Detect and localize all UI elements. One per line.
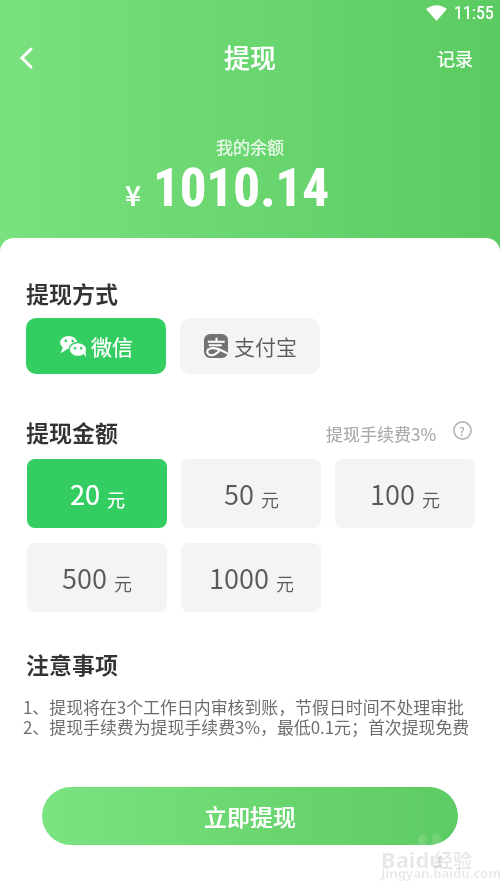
button[interactable]: Back	[0, 32, 52, 84]
staticText: 元	[261, 486, 279, 512]
staticText: 提现方式	[26, 276, 118, 309]
staticText: 提现手续费3%	[326, 421, 437, 446]
staticText: 2、提现手续费为提现手续费3%，最低0.1元；首次提现免费	[23, 714, 470, 738]
staticText: 100	[370, 474, 415, 513]
button[interactable]: 500	[27, 543, 167, 612]
button[interactable]: 50	[181, 459, 321, 528]
staticText: ?	[459, 422, 465, 439]
staticText: 20	[70, 474, 100, 513]
staticText: 50	[224, 474, 254, 513]
staticText: 注意事项	[26, 647, 118, 680]
staticText: 我的余额	[216, 134, 284, 159]
button[interactable]: Fee info	[452, 420, 472, 440]
staticText: 记录	[437, 45, 473, 71]
button[interactable]: 记录	[406, 32, 486, 84]
staticText: 经验	[434, 846, 473, 874]
staticText: 1、提现将在3个工作日内审核到账，节假日时间不处理审批	[23, 694, 465, 718]
staticText: 提现金额	[26, 415, 118, 448]
staticText: 提现	[224, 38, 277, 76]
staticText: 元	[276, 570, 294, 596]
staticText: Jingyan.baidu.com	[381, 864, 500, 882]
staticText: 1000	[209, 558, 269, 597]
staticText: 1010.14	[153, 157, 330, 219]
staticText: 元	[114, 570, 132, 596]
staticText: 微信	[91, 331, 133, 361]
staticText: 立即提现	[204, 799, 296, 832]
button[interactable]: 100	[335, 459, 475, 528]
button[interactable]: 立即提现	[42, 787, 458, 845]
button[interactable]: 微信	[26, 318, 166, 374]
button[interactable]: 支付宝	[180, 318, 320, 374]
staticText: 500	[62, 558, 107, 597]
staticText: 支付宝	[234, 331, 297, 361]
button[interactable]: 1000	[181, 543, 321, 612]
staticText: 元	[107, 486, 125, 512]
staticText: Baidu	[381, 844, 444, 874]
button[interactable]: 20	[27, 459, 167, 528]
staticText: 11:55	[454, 2, 494, 23]
staticText: 元	[422, 486, 440, 512]
staticText: ¥	[125, 174, 141, 215]
